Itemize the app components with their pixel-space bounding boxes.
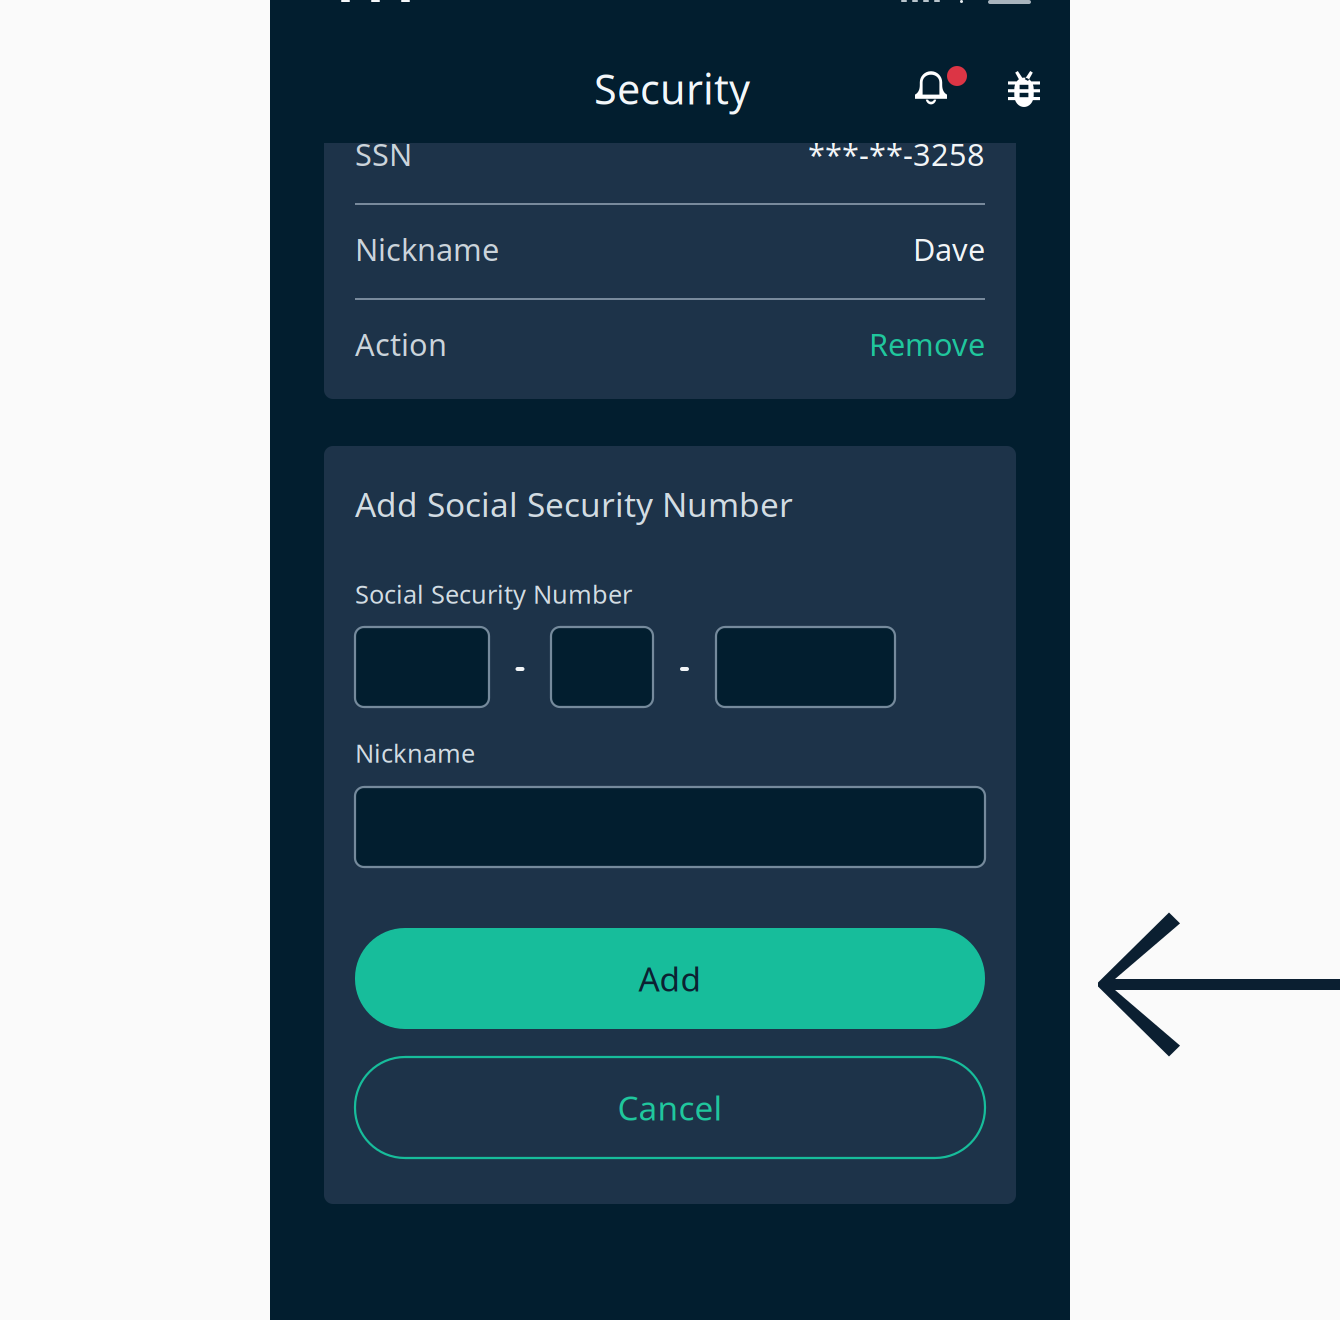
- button[interactable]: Notifications: [912, 64, 968, 116]
- button[interactable]: Cancel: [355, 1057, 985, 1158]
- staticText: Security: [594, 61, 750, 116]
- staticText: Nickname: [355, 229, 499, 269]
- button[interactable]: Report a bug: [1000, 64, 1048, 116]
- staticText: Dave: [913, 229, 985, 269]
- button[interactable]: Add: [355, 928, 985, 1029]
- staticText: SSN: [355, 134, 412, 174]
- staticText: Nickname: [355, 736, 475, 770]
- staticText: Social Security Number: [355, 577, 632, 611]
- staticText: Action: [355, 324, 447, 364]
- button[interactable]: Social Security Number, middle two digit…: [551, 627, 653, 707]
- staticText: Cancel: [617, 1085, 722, 1130]
- staticText: Add: [638, 956, 701, 1001]
- button[interactable]: Social Security Number, first three digi…: [355, 627, 489, 707]
- button[interactable]: Nickname: [355, 787, 985, 867]
- staticText: ***-**-3258: [808, 134, 985, 174]
- staticText: Remove: [869, 324, 985, 364]
- button[interactable]: Social Security Number, last four digits: [716, 627, 895, 707]
- staticText: Add Social Security Number: [355, 482, 793, 526]
- button[interactable]: Action: [355, 314, 985, 374]
